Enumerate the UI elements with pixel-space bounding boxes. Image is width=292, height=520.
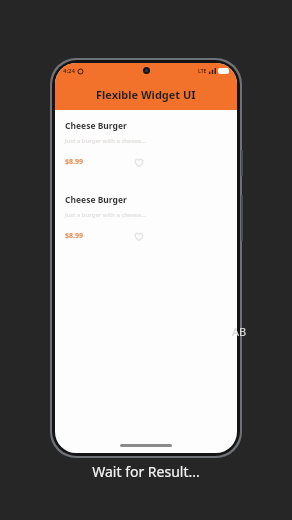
button[interactable]: Favorite [131, 228, 147, 244]
staticText: Cheese Burger [65, 120, 127, 132]
staticText: LTE [198, 68, 207, 75]
staticText: $8.99 [65, 157, 83, 167]
staticText: Cheese Burger [65, 194, 127, 206]
staticText: Just a burger with a cheese... [65, 137, 146, 145]
button[interactable]: Cheese Burger [55, 116, 237, 174]
button[interactable]: Cheese Burger [55, 190, 237, 248]
staticText: Just a burger with a cheese... [65, 211, 146, 219]
staticText: Flexible Widget UI [96, 87, 196, 102]
staticText: $8.99 [65, 231, 83, 241]
button[interactable]: Favorite [131, 154, 147, 170]
staticText: AB [232, 324, 247, 339]
staticText: 4:24 [63, 67, 75, 75]
staticText: Wait for Result... [92, 462, 200, 481]
